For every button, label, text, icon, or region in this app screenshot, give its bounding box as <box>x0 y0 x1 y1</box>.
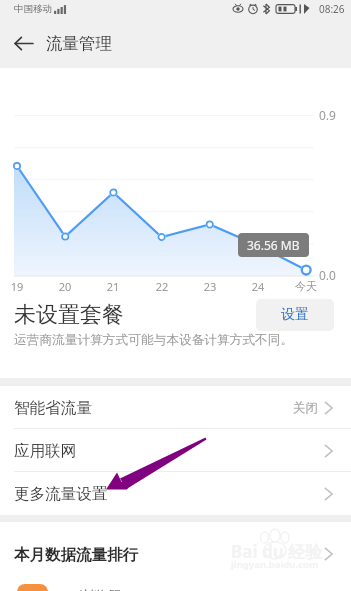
staticText: 08:26 <box>319 2 345 16</box>
staticText: 0.9 <box>319 107 336 123</box>
staticText: 运营商流量计算方式可能与本设备计算方式不同。 <box>14 332 294 348</box>
staticText: 未设置套餐 <box>14 301 256 329</box>
staticText: 应用联网 <box>14 441 77 461</box>
staticText: 36.56 MB <box>247 237 300 253</box>
button[interactable]: 设置 <box>256 299 334 331</box>
button[interactable]: 应用联网 <box>0 429 351 472</box>
staticText: 22 <box>148 279 176 294</box>
staticText: 中国移动 <box>14 3 52 15</box>
button[interactable]: Back <box>0 20 46 66</box>
staticText: 关闭 <box>293 400 319 416</box>
staticText: Bai du 经验 <box>231 540 323 563</box>
button[interactable]: 本月数据流量排行 <box>14 522 333 584</box>
button[interactable]: 智能省流量 <box>0 386 351 429</box>
staticText: 流量管理 <box>46 33 112 54</box>
staticText: 今天 <box>292 279 320 293</box>
button[interactable]: 更多流量设置 <box>0 472 351 515</box>
staticText: 21 <box>99 279 127 294</box>
staticText: 19 <box>3 279 31 294</box>
staticText: 更多流量设置 <box>14 484 108 504</box>
staticText: 本月数据流量排行 <box>14 545 138 565</box>
staticText: 23 <box>196 279 224 294</box>
staticText: 24 <box>244 279 272 294</box>
staticText: jingyan.baidu.com <box>231 558 319 571</box>
staticText: QQ浏览器 <box>58 586 122 591</box>
staticText: 设置 <box>281 306 309 324</box>
staticText: 20 <box>51 279 79 294</box>
staticText: 智能省流量 <box>14 398 92 418</box>
staticText: 0.0 <box>319 267 336 283</box>
